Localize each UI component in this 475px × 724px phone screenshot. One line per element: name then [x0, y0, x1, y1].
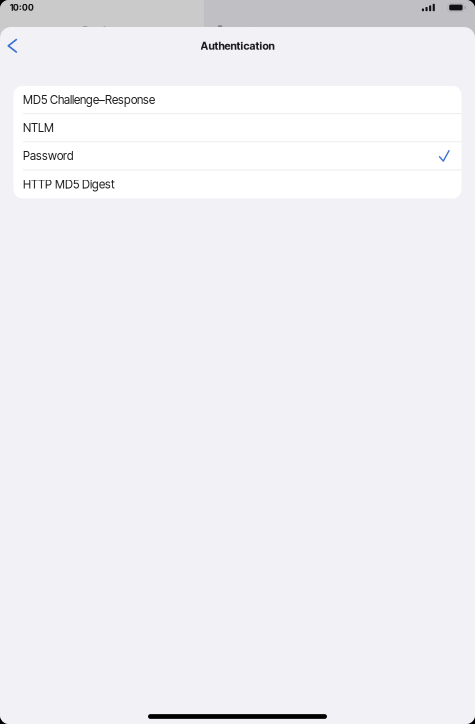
staticText: Authentication	[200, 39, 274, 52]
staticText: MD5 Challenge–Response	[23, 93, 155, 107]
button[interactable]: Back	[0, 32, 25, 60]
button[interactable]: NTLM	[13, 114, 461, 142]
staticText: HTTP MD5 Digest	[23, 177, 115, 191]
staticText: Password	[23, 149, 74, 163]
button[interactable]: MD5 Challenge–Response	[13, 86, 461, 114]
button[interactable]: HTTP MD5 Digest	[13, 170, 461, 198]
staticText: 10:00	[10, 2, 34, 13]
staticText: NTLM	[23, 121, 54, 135]
button[interactable]: Password	[13, 142, 461, 170]
